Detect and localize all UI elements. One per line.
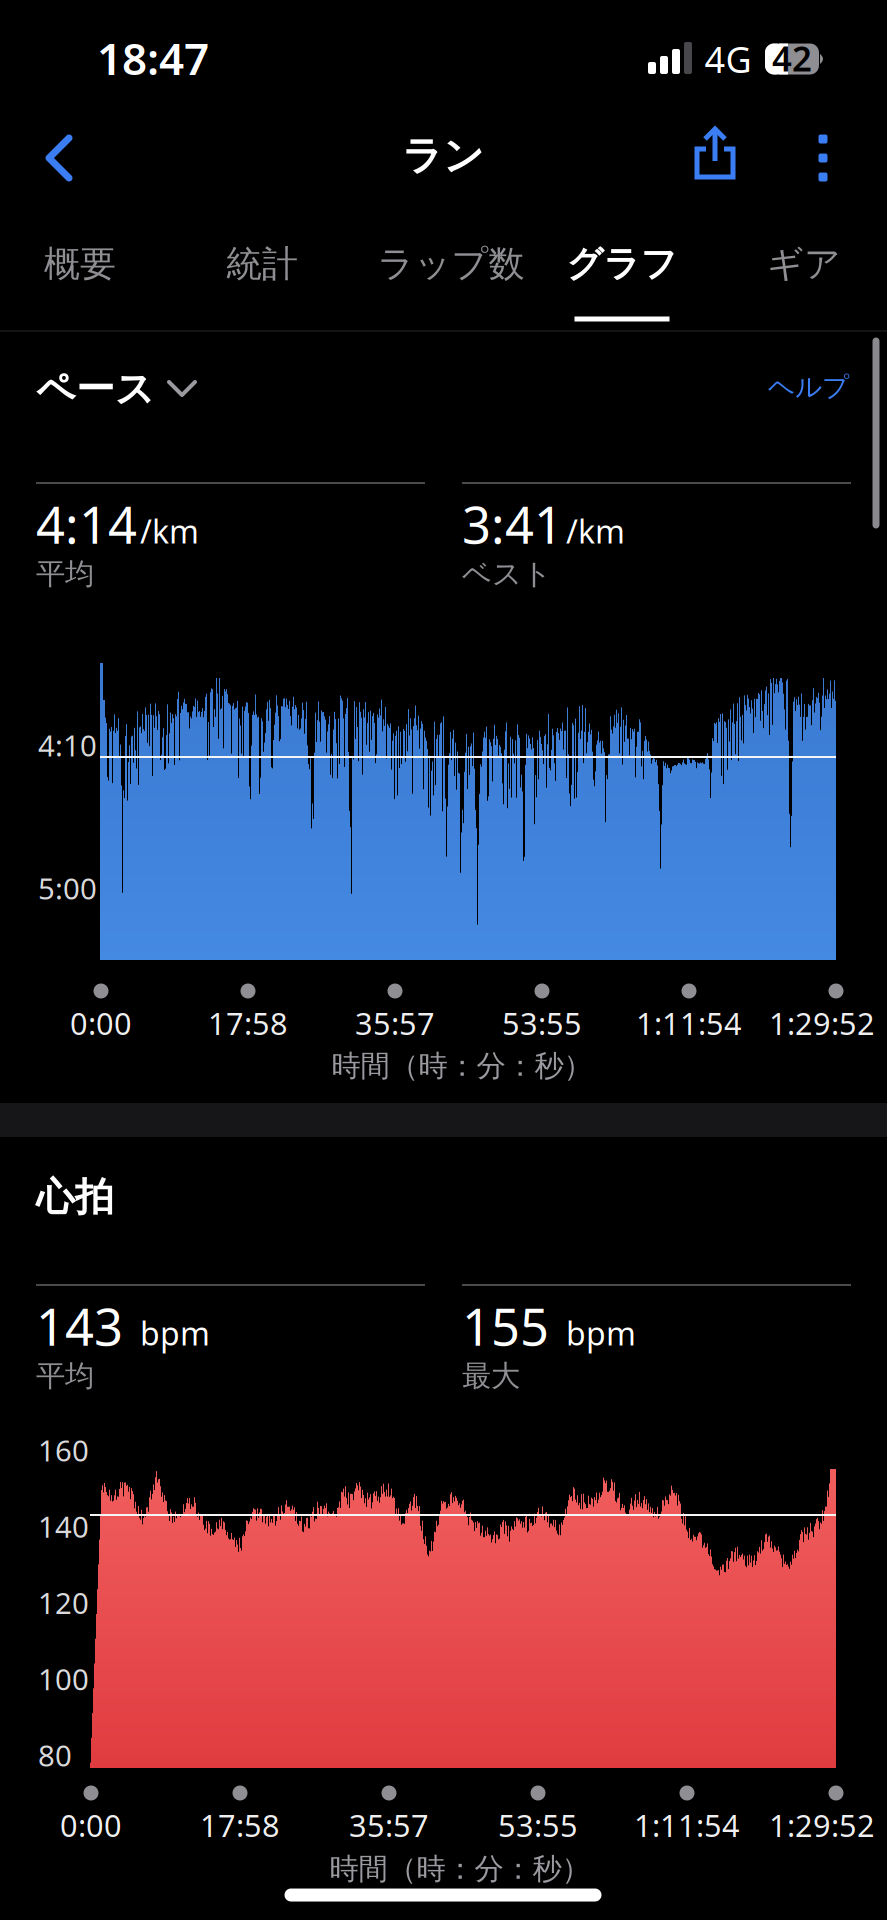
staticText: ペース [36, 365, 155, 413]
staticText: 140 [38, 1507, 89, 1546]
staticText: 17:58 [208, 1003, 288, 1043]
staticText: 4:10 [38, 725, 97, 764]
staticText: 時間（時：分：秒） [331, 1048, 592, 1084]
staticText: ラップ数 [377, 242, 524, 286]
staticText: ラン [402, 131, 484, 180]
staticText: 最大 [462, 1358, 520, 1394]
staticText: 80 [38, 1735, 72, 1774]
staticText: 4:14 [36, 490, 137, 558]
staticText: bpm [566, 1312, 636, 1354]
staticText: 155 [462, 1292, 549, 1360]
staticText: 平均 [36, 1358, 94, 1394]
button[interactable]: ギア [767, 232, 841, 296]
staticText: 120 [38, 1583, 89, 1622]
staticText: 160 [38, 1430, 89, 1469]
staticText: 0:00 [60, 1805, 122, 1845]
staticText: 概要 [44, 242, 116, 286]
button[interactable]: Share [693, 125, 737, 181]
staticText: 統計 [226, 242, 298, 286]
staticText: 4G [704, 35, 751, 83]
staticText: 100 [38, 1659, 89, 1698]
button[interactable]: ラップ数 [377, 232, 524, 296]
staticText: 17:58 [200, 1805, 280, 1845]
staticText: 35:57 [349, 1805, 429, 1845]
button[interactable]: 概要 [44, 232, 116, 296]
staticText: 1:11:54 [636, 1003, 742, 1043]
button[interactable]: More [808, 133, 838, 183]
staticText: /km [566, 510, 625, 552]
button[interactable]: ペース [36, 357, 296, 421]
staticText: bpm [140, 1312, 210, 1354]
staticText: 平均 [36, 556, 94, 592]
staticText: 53:55 [498, 1805, 578, 1845]
staticText: 1:11:54 [634, 1805, 740, 1845]
staticText: ギア [767, 242, 841, 286]
staticText: ヘルプ [768, 371, 849, 403]
staticText: 42 [772, 35, 812, 81]
staticText: グラフ [566, 242, 677, 286]
staticText: 心拍 [36, 1173, 114, 1221]
staticText: 143 [36, 1292, 123, 1360]
staticText: 18:47 [97, 29, 209, 87]
button[interactable]: Back [45, 135, 73, 181]
staticText: 1:29:52 [769, 1805, 875, 1845]
staticText: 5:00 [38, 868, 97, 907]
staticText: 3:41 [462, 490, 563, 558]
staticText: 1:29:52 [769, 1003, 875, 1043]
staticText: ベスト [462, 556, 552, 592]
staticText: 時間（時：分：秒） [329, 1851, 590, 1887]
staticText: 0:00 [70, 1003, 132, 1043]
button[interactable]: ヘルプ [689, 357, 849, 417]
staticText: 35:57 [355, 1003, 435, 1043]
button[interactable]: グラフ [566, 232, 677, 296]
staticText: /km [140, 510, 199, 552]
button[interactable]: 統計 [226, 232, 298, 296]
staticText: 53:55 [502, 1003, 582, 1043]
